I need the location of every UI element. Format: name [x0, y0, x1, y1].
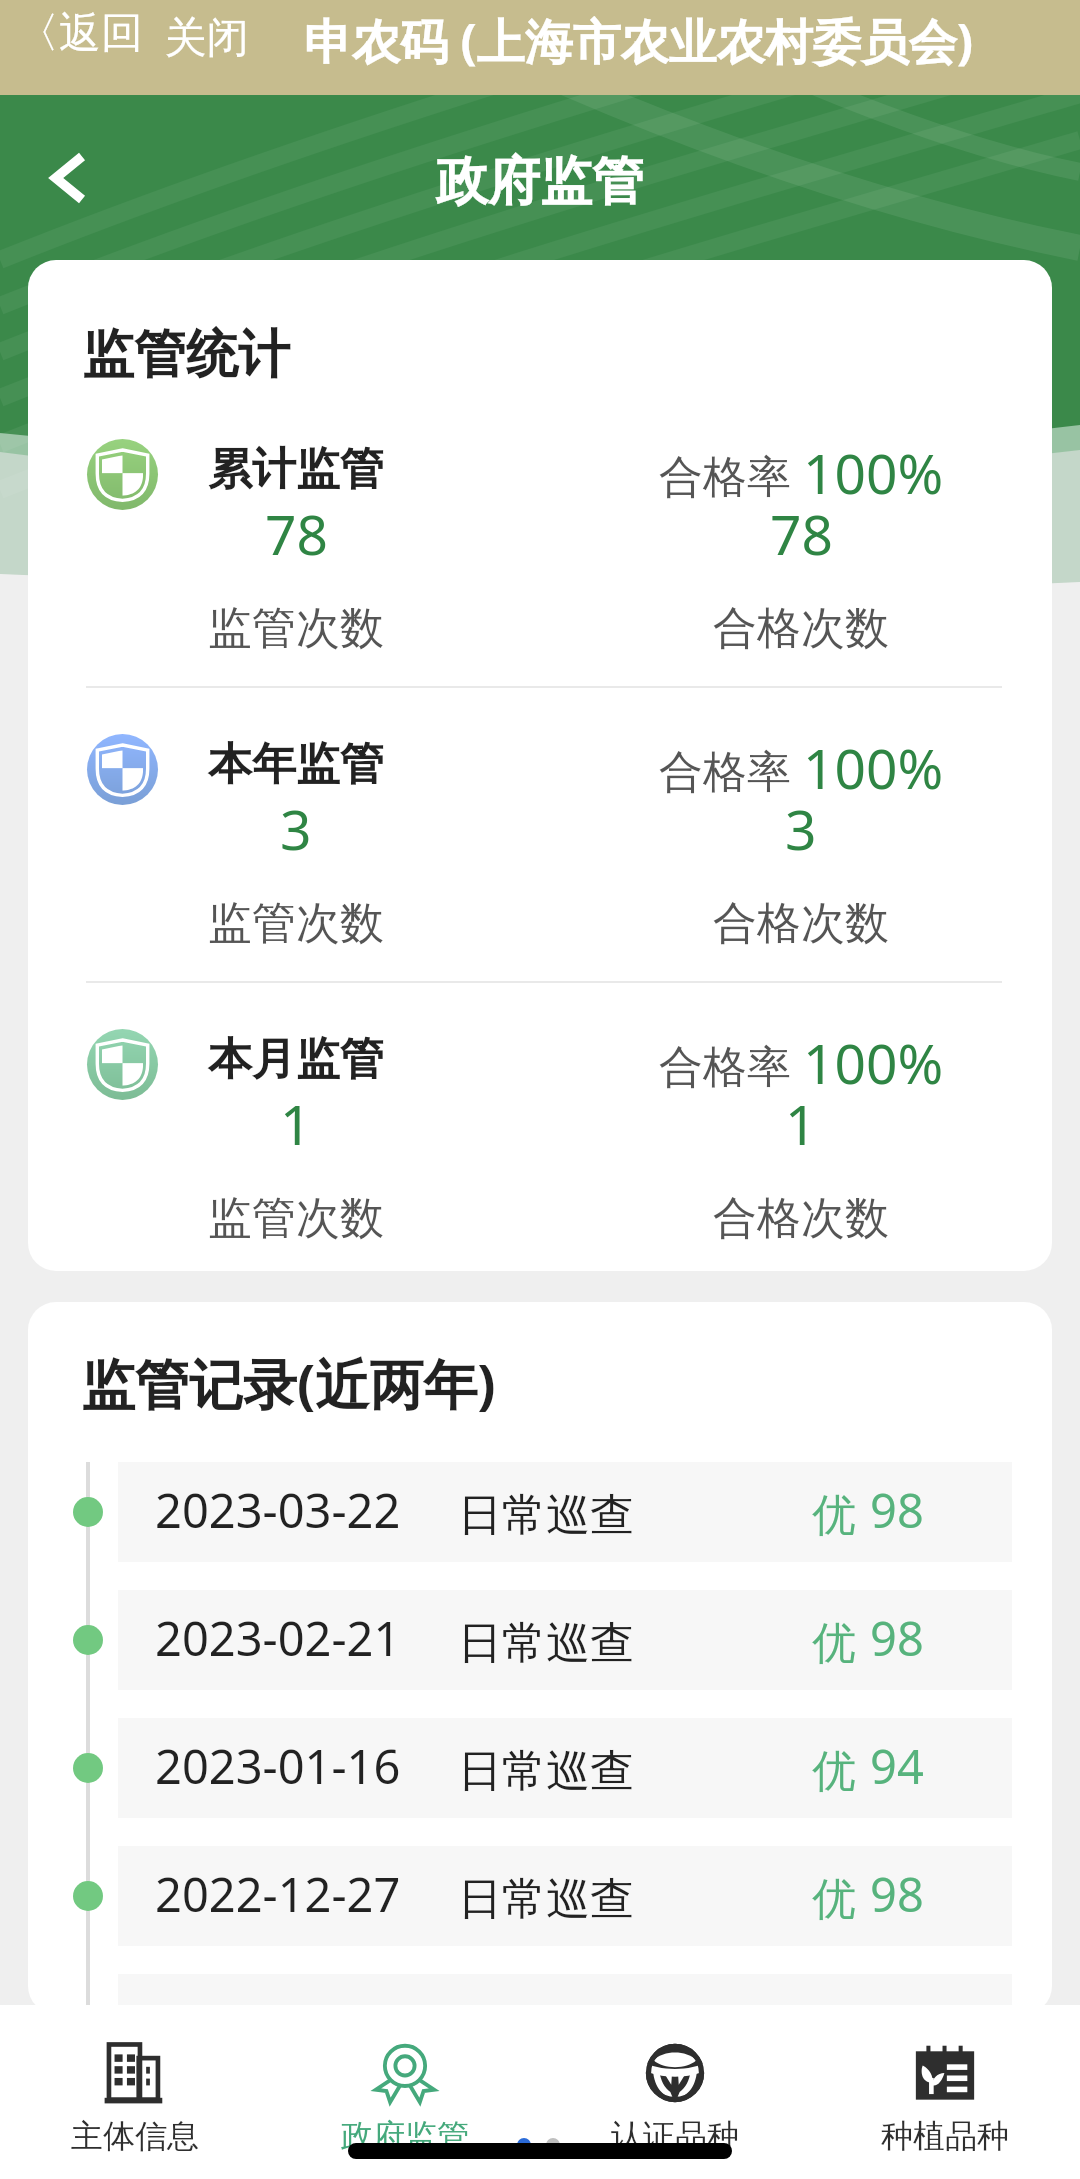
staticText: 政府监管	[341, 2116, 469, 2156]
staticText: 合格率	[659, 1035, 803, 1095]
button[interactable]: 2023-03-22	[118, 1462, 1012, 1562]
staticText: 98	[870, 1478, 924, 1542]
staticText: 监管次数	[208, 896, 384, 951]
staticText: 监管记录(近两年)	[81, 1346, 496, 1420]
staticText: 本月监管	[208, 1032, 384, 1087]
staticText: 2022-12-27	[155, 1862, 401, 1926]
button[interactable]: 〈返回	[17, 7, 143, 60]
staticText: 本年监管	[208, 737, 384, 792]
staticText: 种植品种	[881, 2116, 1009, 2156]
staticText: 98	[870, 1606, 924, 1670]
staticText: 优	[812, 2000, 856, 2014]
staticText: 日常巡查	[458, 1616, 634, 1671]
staticText: 认证品种	[611, 2116, 739, 2156]
staticText: 优	[812, 1744, 856, 1799]
staticText: 日常巡查	[458, 2000, 634, 2014]
staticText: 优	[812, 1616, 856, 1671]
staticText: 合格次数	[713, 1191, 889, 1246]
staticText: 2023-03-22	[155, 1478, 401, 1542]
staticText: 合格率	[659, 740, 803, 800]
button[interactable]: 2022-11-15	[118, 1974, 1012, 2014]
staticText: 1	[280, 1086, 312, 1161]
button[interactable]: 2023-02-21	[118, 1590, 1012, 1690]
staticText: 累计监管	[208, 442, 384, 497]
staticText: 〈返回	[17, 7, 143, 60]
button[interactable]: 关闭	[143, 7, 249, 64]
staticText: 100%	[803, 730, 944, 805]
staticText: 2023-01-16	[155, 1734, 401, 1798]
staticText: 78	[770, 496, 833, 571]
staticText: 优	[812, 1488, 856, 1543]
button[interactable]: 政府监管	[270, 2005, 540, 2179]
staticText: 政府监管	[0, 149, 1080, 215]
staticText: 94	[870, 1734, 924, 1798]
staticText: 日常巡查	[458, 1744, 634, 1799]
button[interactable]: 种植品种	[810, 2005, 1080, 2179]
staticText: 合格率	[659, 445, 803, 505]
staticText: 98	[870, 1862, 924, 1926]
button[interactable]: 2022-12-27	[118, 1846, 1012, 1946]
staticText: 日常巡查	[458, 1488, 634, 1543]
staticText: 日常巡查	[458, 1872, 634, 1927]
staticText: 监管次数	[208, 1191, 384, 1246]
staticText: 2022-11-15	[155, 1990, 401, 2014]
staticText: 主体信息	[71, 2116, 199, 2156]
staticText: 78	[265, 496, 328, 571]
button[interactable]: Back	[23, 134, 111, 222]
staticText: 合格次数	[713, 601, 889, 656]
staticText: 优	[812, 1872, 856, 1927]
staticText: 98	[870, 1990, 924, 2014]
staticText: 申农码 (上海市农业农村委员会)	[304, 8, 974, 74]
button[interactable]: 主体信息	[0, 2005, 270, 2179]
staticText: 3	[785, 791, 817, 866]
button[interactable]: 认证品种	[540, 2005, 810, 2179]
staticText: 2023-02-21	[155, 1606, 401, 1670]
staticText: 监管次数	[208, 601, 384, 656]
staticText: 合格次数	[713, 896, 889, 951]
staticText: 监管统计	[82, 322, 290, 388]
staticText: 1	[785, 1086, 817, 1161]
staticText: 关闭	[143, 7, 249, 64]
staticText: 100%	[803, 1025, 944, 1100]
staticText: 100%	[803, 435, 944, 510]
button[interactable]: 2023-01-16	[118, 1718, 1012, 1818]
staticText: 3	[280, 791, 312, 866]
